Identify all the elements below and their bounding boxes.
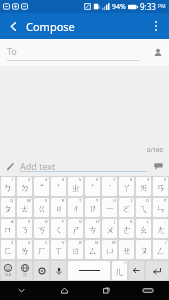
staticText: R (62, 198, 65, 203)
staticText: H (96, 219, 99, 224)
button[interactable]: Back (0, 13, 26, 39)
button[interactable]: 2 (17, 177, 32, 196)
button[interactable]: H (85, 219, 100, 238)
button[interactable]: I (119, 198, 134, 217)
button[interactable]: U (102, 198, 117, 217)
button[interactable]: K (119, 219, 134, 238)
button[interactable]: L (136, 219, 151, 238)
staticText: , (131, 240, 133, 245)
staticText: ㄅ (3, 182, 13, 193)
staticText: / (165, 240, 167, 245)
button[interactable]: D (34, 219, 49, 238)
staticText: ㄖ (71, 245, 81, 256)
button[interactable]: R (51, 198, 66, 217)
button[interactable]: 5 (68, 177, 83, 196)
button[interactable]: Switch keyboard (127, 281, 169, 300)
button[interactable]: Backspace (129, 261, 144, 280)
button[interactable]: M (102, 240, 117, 259)
button[interactable]: , (119, 240, 134, 259)
staticText: S (28, 219, 31, 224)
staticText: 1 (11, 177, 14, 182)
staticText: 2 (28, 177, 31, 182)
button[interactable]: Z (1, 240, 15, 259)
staticText: L (147, 219, 150, 224)
button[interactable]: 4 (51, 177, 66, 196)
staticText: P (164, 198, 167, 203)
staticText: ㄩ (105, 245, 115, 256)
button[interactable]: N (85, 240, 100, 259)
button[interactable]: Home (43, 281, 85, 300)
button[interactable]: 3 (34, 177, 49, 196)
staticText: A (11, 219, 14, 224)
staticText: Y (96, 198, 99, 203)
staticText: Q (10, 198, 14, 203)
button[interactable]: : (153, 219, 168, 238)
staticText: ㄜ (122, 224, 132, 235)
button[interactable]: 0 (153, 177, 168, 196)
staticText: To (7, 45, 17, 57)
button[interactable]: Symbols (1, 261, 15, 280)
staticText: 8 (130, 177, 133, 182)
button[interactable]: X (17, 240, 32, 259)
staticText: ㄚ (122, 182, 132, 193)
button[interactable]: A (1, 219, 15, 238)
staticText: ㄤ (156, 224, 166, 235)
staticText: C (45, 240, 48, 245)
staticText: B (79, 240, 82, 245)
button[interactable]: Change language (17, 261, 32, 280)
staticText: J (114, 219, 116, 224)
button[interactable]: Enter (146, 261, 168, 280)
staticText: ㄛ (122, 203, 132, 214)
staticText: ㄐ (54, 203, 64, 214)
button[interactable]: 7 (102, 177, 117, 196)
button[interactable]: W (17, 198, 32, 217)
button[interactable]: F (51, 219, 66, 238)
button[interactable]: 1 (1, 177, 15, 196)
button[interactable]: G (68, 219, 83, 238)
button[interactable]: To (0, 39, 169, 66)
staticText: 5 (79, 177, 82, 182)
button[interactable]: B (68, 240, 83, 259)
button[interactable]: Add contact (147, 42, 169, 64)
button[interactable]: ? (112, 261, 127, 280)
button[interactable]: Recent apps (85, 281, 127, 300)
button[interactable]: Q (1, 198, 15, 217)
button[interactable]: Settings (34, 261, 49, 280)
staticText: V (62, 240, 65, 245)
staticText: Z (11, 240, 14, 245)
button[interactable]: E (34, 198, 49, 217)
staticText: ㄗ (88, 203, 98, 214)
staticText: T (79, 198, 82, 203)
button[interactable]: . (136, 240, 151, 259)
button[interactable]: S (17, 219, 32, 238)
staticText: E (45, 198, 48, 203)
button[interactable]: Hide keyboard (0, 281, 43, 300)
button[interactable]: 8 (119, 177, 134, 196)
staticText: . (148, 240, 150, 245)
button[interactable]: Voice input (51, 261, 66, 280)
staticText: ˋ (57, 182, 60, 194)
staticText: 注 (23, 272, 27, 277)
staticText: F (62, 219, 65, 224)
button[interactable]: C (34, 240, 49, 259)
staticText: 3 (45, 177, 48, 182)
button[interactable]: Send (147, 155, 169, 176)
button[interactable]: / (153, 240, 168, 259)
button[interactable]: P (153, 198, 168, 217)
button[interactable]: Attach (0, 156, 20, 176)
button[interactable]: Y (85, 198, 100, 217)
button[interactable]: 9 (136, 177, 151, 196)
staticText: ㄠ (139, 224, 149, 235)
button[interactable]: Space (68, 261, 110, 280)
staticText: X (28, 240, 31, 245)
button[interactable]: V (51, 240, 66, 259)
staticText: ㄦ (115, 266, 125, 277)
button[interactable]: 6 (85, 177, 100, 196)
staticText: Add text (20, 160, 56, 172)
staticText: ㄊ (20, 203, 30, 214)
button[interactable]: T (68, 198, 83, 217)
button[interactable]: O (136, 198, 151, 217)
button[interactable]: J (102, 219, 117, 238)
button[interactable]: More options (143, 13, 169, 39)
staticText: ㄆ (3, 203, 13, 214)
